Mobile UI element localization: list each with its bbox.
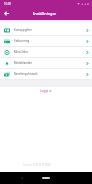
staticText: Betalningshistorik: [14, 72, 86, 76]
staticText: Inställningar: [33, 11, 57, 16]
button[interactable]: Mina Sidor: [0, 47, 92, 58]
staticText: Meddelanden: [14, 61, 86, 65]
staticText: 10:38: [4, 2, 11, 6]
staticText: Fakturering: [14, 39, 86, 43]
button[interactable]: Kortuppgifter: [0, 25, 92, 36]
button[interactable]: Home: [42, 177, 50, 179]
staticText: Mina Sidor: [14, 50, 86, 54]
staticText: Kortuppgifter: [14, 28, 86, 32]
button[interactable]: Fakturering: [0, 36, 92, 47]
button[interactable]: Betalningshistorik: [0, 69, 92, 80]
button[interactable]: Back: [20, 176, 24, 180]
button[interactable]: Logga ut: [37, 88, 55, 94]
staticText: 3.21.0 (1702): [33, 163, 51, 167]
button[interactable]: Meddelanden: [0, 58, 92, 69]
staticText: Logga ut: [40, 89, 52, 93]
button[interactable]: Back: [1, 9, 11, 19]
staticText: Version: [23, 163, 33, 167]
